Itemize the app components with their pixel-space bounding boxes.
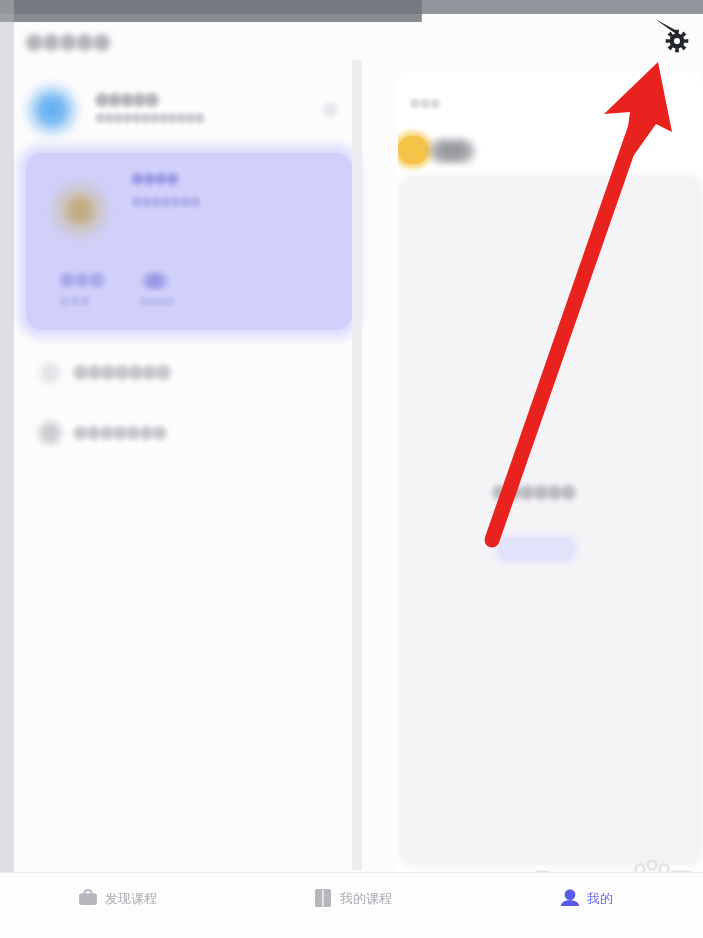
staticText: 发现课程 — [105, 890, 157, 906]
staticText: 我的 — [587, 890, 613, 906]
button[interactable]: 我的 — [469, 873, 703, 922]
button[interactable]: Settings — [655, 19, 699, 63]
button[interactable]: 我的课程 — [235, 873, 469, 922]
button[interactable]: 发现课程 — [0, 873, 235, 922]
staticText: 我的课程 — [340, 890, 392, 906]
